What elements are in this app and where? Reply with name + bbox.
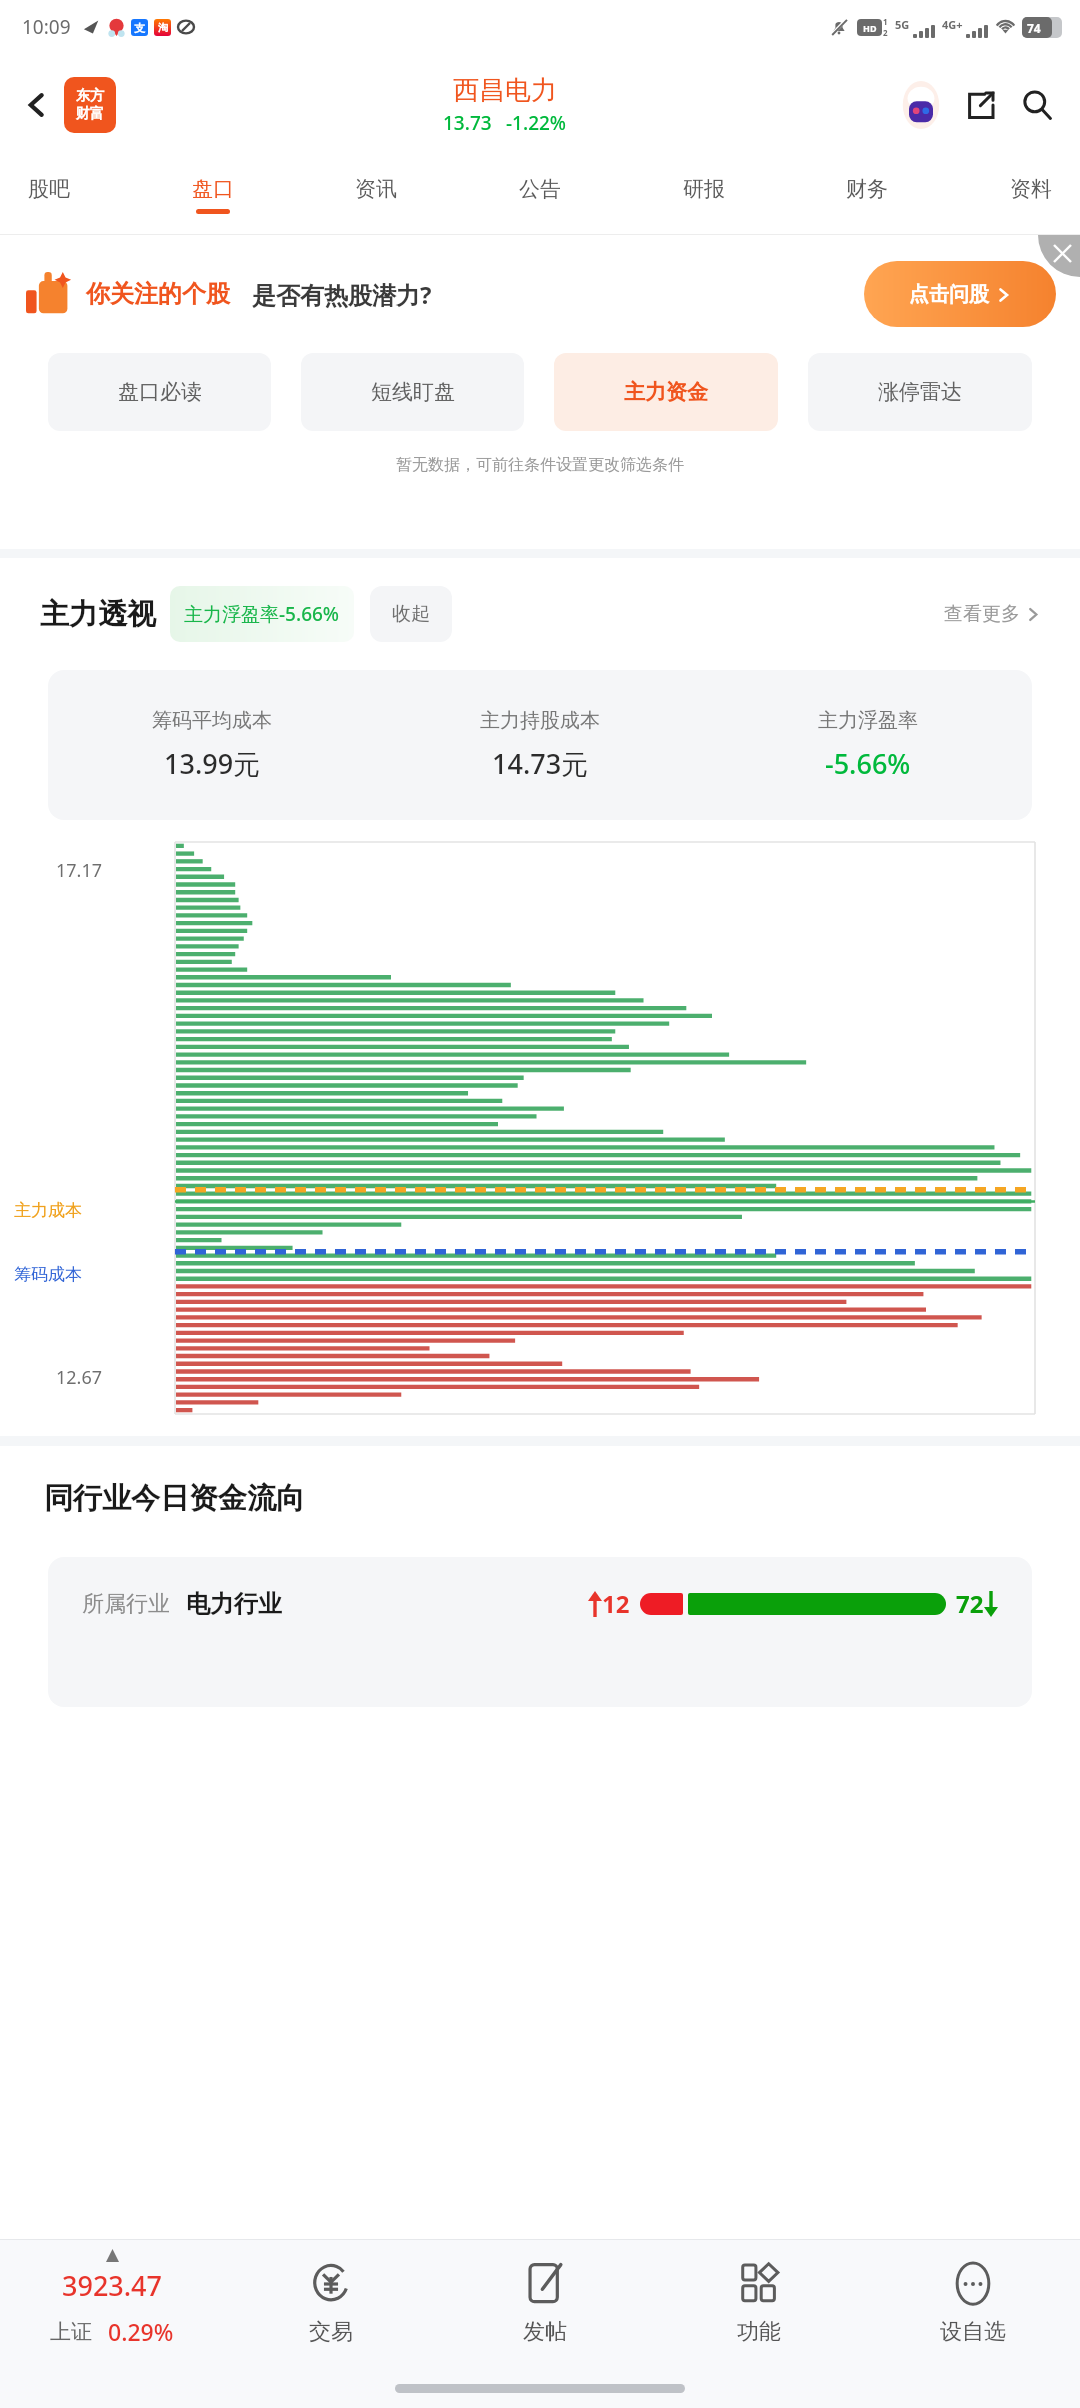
- staticText: 4G+: [942, 17, 963, 32]
- staticText: 电力行业: [186, 1589, 282, 1619]
- staticText: 筹码平均成本: [152, 708, 272, 733]
- staticText: 东方: [76, 87, 104, 105]
- staticText: 13.73: [443, 110, 492, 136]
- staticText: 财务: [846, 176, 888, 202]
- button[interactable]: 主力资金: [554, 353, 778, 431]
- button[interactable]: 查看更多: [944, 602, 1040, 626]
- staticText: 主力资金: [624, 379, 708, 405]
- staticText: 查看更多: [944, 602, 1020, 626]
- staticText: 上证: [50, 2319, 92, 2345]
- staticText: 发帖: [523, 2318, 567, 2346]
- button[interactable]: 资讯: [349, 168, 403, 222]
- staticText: 盘口: [192, 176, 234, 202]
- staticText: 设自选: [940, 2318, 1006, 2346]
- staticText: 交易: [309, 2318, 353, 2346]
- staticText: HD: [863, 22, 877, 34]
- button[interactable]: 3923.47: [0, 2262, 224, 2347]
- staticText: 股吧: [28, 176, 70, 202]
- staticText: 财富: [76, 105, 104, 123]
- button[interactable]: 交易: [224, 2240, 438, 2368]
- staticText: -5.66%: [825, 745, 911, 782]
- button[interactable]: 涨停雷达: [808, 353, 1032, 431]
- staticText: 研报: [683, 176, 725, 202]
- staticText: 同行业今日资金流向: [44, 1480, 305, 1517]
- button[interactable]: 研报: [677, 168, 731, 222]
- staticText: 功能: [737, 2318, 781, 2346]
- button[interactable]: 股吧: [22, 168, 76, 222]
- staticText: 72: [956, 1587, 984, 1620]
- button[interactable]: 所属行业: [48, 1557, 1032, 1707]
- button[interactable]: 东方财富: [64, 77, 116, 133]
- staticText: 筹码成本: [14, 1264, 82, 1285]
- staticText: 涨停雷达: [878, 379, 962, 405]
- staticText: 1: [883, 16, 888, 27]
- button[interactable]: Search: [1012, 80, 1062, 130]
- button[interactable]: Share: [956, 80, 1006, 130]
- staticText: 12.67: [56, 1365, 103, 1390]
- staticText: 5G: [895, 17, 910, 32]
- button[interactable]: AI assistant: [894, 78, 948, 132]
- staticText: -1.22%: [506, 110, 567, 136]
- staticText: 是否有热股潜力?: [252, 278, 432, 311]
- button[interactable]: Back: [14, 82, 60, 128]
- staticText: 暂无数据，可前往条件设置更改筛选条件: [396, 455, 684, 475]
- staticText: 盘口必读: [118, 379, 202, 405]
- button[interactable]: 盘口必读: [48, 353, 271, 431]
- staticText: 淘: [158, 21, 168, 34]
- staticText: 主力浮盈率: [818, 708, 918, 733]
- staticText: 主力成本: [14, 1200, 82, 1221]
- staticText: 主力持股成本: [480, 708, 600, 733]
- staticText: 17.17: [56, 858, 103, 883]
- button[interactable]: 发帖: [438, 2240, 652, 2368]
- staticText: 资料: [1010, 176, 1052, 202]
- staticText: 你关注的个股: [86, 279, 230, 309]
- staticText: 公告: [519, 176, 561, 202]
- button[interactable]: 短线盯盘: [301, 353, 524, 431]
- staticText: 主力浮盈率-5.66%: [184, 601, 340, 627]
- button[interactable]: 点击问股: [864, 261, 1056, 327]
- staticText: 短线盯盘: [371, 379, 455, 405]
- staticText: 0.29%: [108, 2316, 174, 2347]
- staticText: 13.99元: [164, 745, 261, 782]
- staticText: 所属行业: [82, 1590, 170, 1618]
- staticText: 3923.47: [62, 2267, 163, 2304]
- staticText: 收起: [392, 602, 430, 626]
- staticText: 西昌电力: [453, 74, 557, 107]
- staticText: 2: [883, 27, 888, 38]
- button[interactable]: 西昌电力: [443, 74, 567, 136]
- button[interactable]: 资料: [1004, 168, 1058, 222]
- staticText: 点击问股: [909, 282, 989, 307]
- staticText: 主力透视: [40, 596, 156, 633]
- staticText: 支: [134, 21, 145, 35]
- staticText: 14.73元: [492, 745, 589, 782]
- button[interactable]: Close: [1038, 235, 1080, 277]
- staticText: 12: [602, 1587, 630, 1620]
- button[interactable]: 功能: [652, 2240, 866, 2368]
- staticText: 74: [1027, 20, 1041, 36]
- button[interactable]: 公告: [513, 168, 567, 222]
- button[interactable]: 盘口: [186, 168, 240, 222]
- button[interactable]: 设自选: [866, 2240, 1080, 2368]
- staticText: 10:09: [22, 14, 71, 40]
- staticText: 资讯: [355, 176, 397, 202]
- button[interactable]: 财务: [840, 168, 894, 222]
- button[interactable]: 收起: [370, 586, 452, 642]
